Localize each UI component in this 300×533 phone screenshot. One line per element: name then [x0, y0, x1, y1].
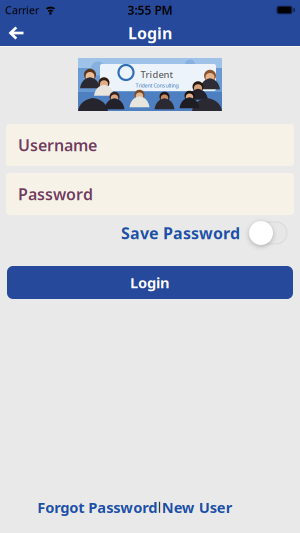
staticText: Trident: [140, 68, 173, 81]
button[interactable]: Username: [6, 124, 294, 166]
button[interactable]: [0, 26, 24, 40]
button[interactable]: Forgot Password: [37, 497, 157, 517]
staticText: Forgot Password: [37, 497, 157, 517]
staticText: Trident Consulting: [135, 82, 178, 89]
staticText: New User: [162, 497, 233, 517]
staticText: Password: [18, 183, 93, 205]
staticText: Carrier: [5, 3, 39, 17]
button[interactable]: New User: [162, 497, 233, 517]
staticText: Login: [128, 22, 172, 44]
button[interactable]: Password: [6, 173, 294, 215]
staticText: Login: [130, 273, 170, 292]
staticText: 3:55 PM: [127, 2, 172, 18]
button[interactable]: [250, 222, 287, 244]
staticText: Username: [18, 134, 97, 156]
button[interactable]: Login: [7, 266, 293, 299]
staticText: Save Password: [121, 222, 240, 244]
